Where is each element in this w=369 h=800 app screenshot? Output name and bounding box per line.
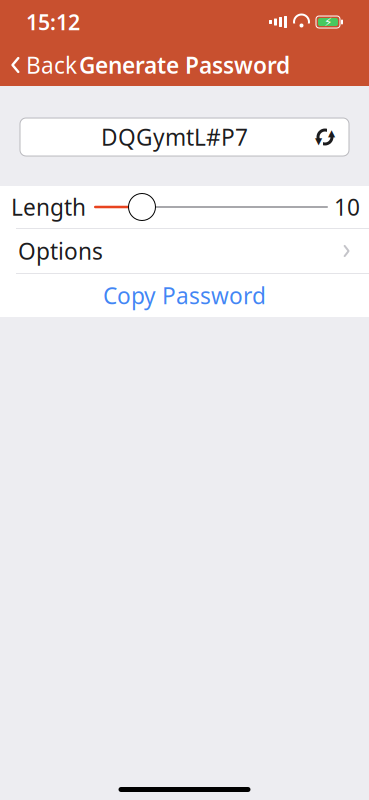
staticText: ⚡︎ — [324, 15, 332, 29]
button[interactable]: Options — [0, 229, 369, 273]
staticText: 15:12 — [26, 8, 80, 36]
staticText: Copy Password — [103, 280, 266, 310]
staticText: DQGymtL#P7 — [101, 122, 248, 152]
staticText: 10 — [334, 192, 360, 222]
staticText: Length — [11, 192, 86, 222]
staticText: Back — [26, 50, 77, 80]
staticText: Options — [18, 236, 103, 266]
staticText: ▲ — [328, 128, 335, 138]
button[interactable]: Copy Password — [0, 274, 369, 317]
staticText: ▼ — [315, 136, 322, 146]
button[interactable]: DQGymtL#P7 — [20, 118, 349, 156]
button[interactable]: Back — [0, 45, 87, 85]
staticText: Generate Password — [79, 50, 290, 80]
